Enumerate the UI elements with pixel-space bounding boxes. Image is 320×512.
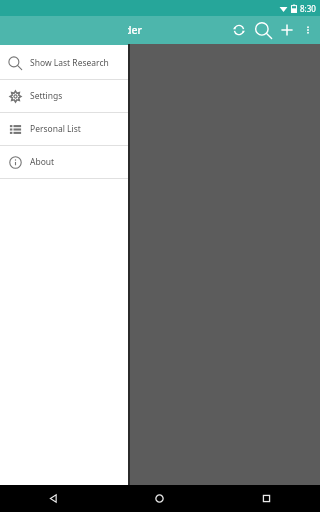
button[interactable]: Add xyxy=(275,18,299,42)
staticText: About xyxy=(30,156,55,168)
button[interactable]: Settings xyxy=(0,80,128,112)
staticText: Remote XDCC Downloader xyxy=(9,23,142,37)
button[interactable]: Search xyxy=(251,18,275,42)
button[interactable]: Recents xyxy=(213,485,320,512)
staticText: Show Last Research xyxy=(30,57,109,69)
staticText: Personal List xyxy=(30,123,81,135)
staticText: 8:30 xyxy=(300,3,316,14)
button[interactable]: Refresh xyxy=(227,18,251,42)
button[interactable]: More options xyxy=(299,18,317,42)
button[interactable]: Show Last Research xyxy=(0,47,128,79)
staticText: Settings xyxy=(30,90,63,102)
button[interactable]: Back xyxy=(0,485,106,512)
button[interactable]: Home xyxy=(106,485,213,512)
staticText: Host not reachable xyxy=(10,53,95,66)
button[interactable]: Personal List xyxy=(0,113,128,145)
button[interactable]: About xyxy=(0,146,128,178)
